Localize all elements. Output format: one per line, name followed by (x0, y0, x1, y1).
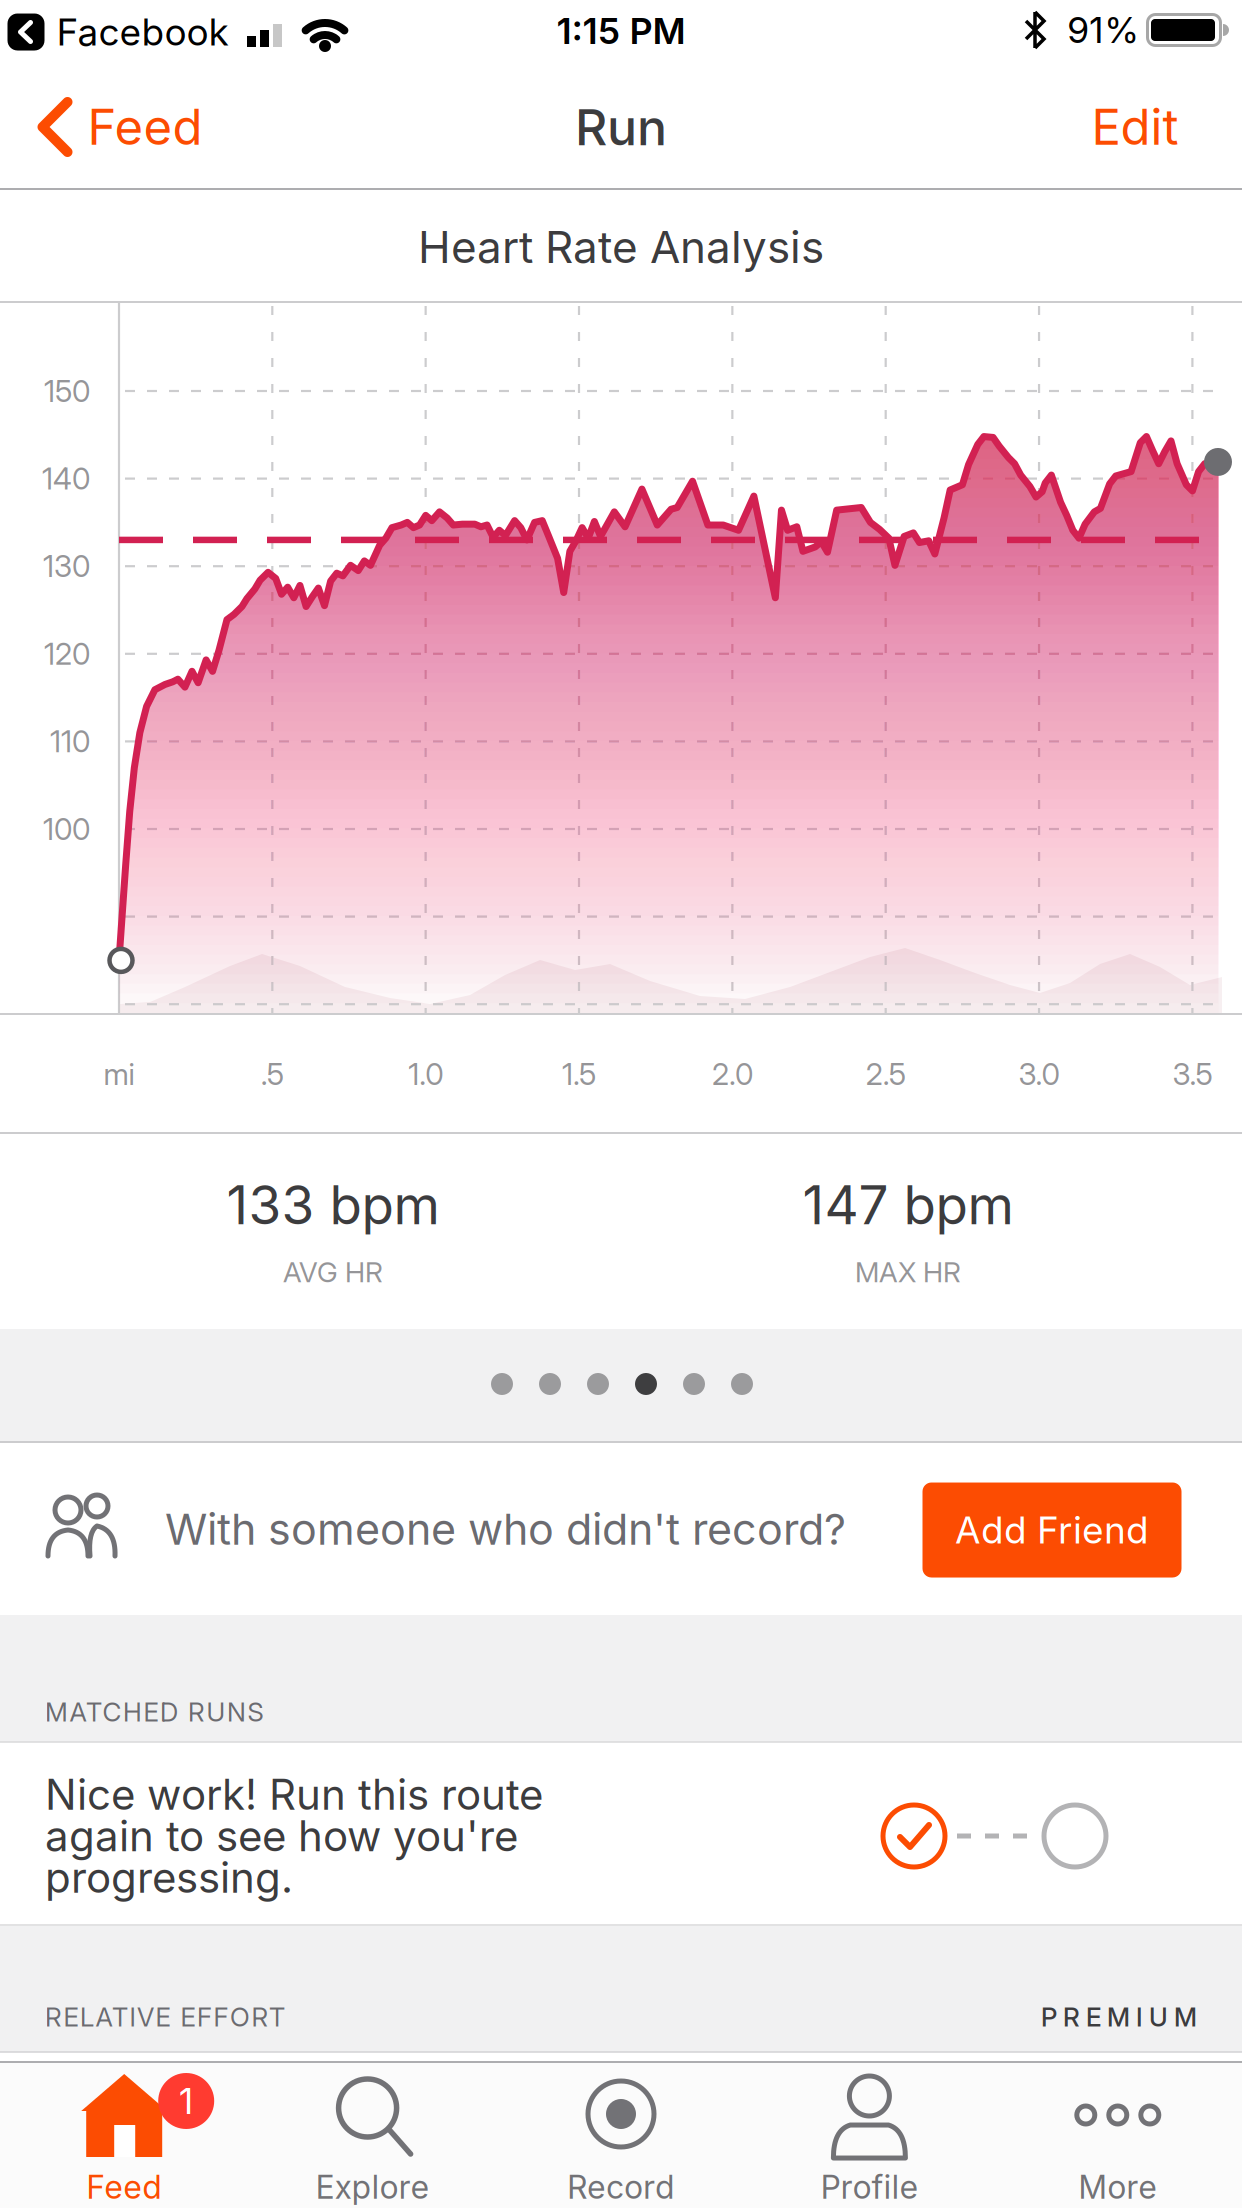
staticText: Add Friend (955, 1508, 1149, 1552)
button[interactable]: Explore (253, 2064, 493, 2208)
staticText: With someone who didn't record? (165, 1504, 846, 1554)
staticText: Feed (86, 2168, 162, 2206)
staticText: 3.0 (1019, 1056, 1060, 1092)
button[interactable]: Facebook (7, 10, 228, 54)
staticText: 1.0 (408, 1056, 443, 1092)
staticText: 100 (43, 811, 90, 847)
staticText: Facebook (56, 10, 228, 54)
staticText: 110 (50, 724, 90, 759)
staticText: MAX HR (855, 1255, 961, 1288)
staticText: 1 (179, 2080, 194, 2122)
button[interactable]: 1 (4, 2064, 244, 2208)
button[interactable]: More (998, 2064, 1238, 2208)
button[interactable]: Nice work! Run this route again to see h… (0, 1744, 1242, 1924)
button[interactable]: Feed (37, 98, 202, 156)
staticText: 150 (44, 373, 90, 409)
button[interactable]: Edit (1091, 98, 1178, 156)
staticText: 2.5 (866, 1056, 906, 1092)
staticText: 147 bpm (802, 1174, 1013, 1236)
button[interactable]: Record (501, 2064, 741, 2208)
staticText: 133 bpm (226, 1174, 439, 1236)
staticText: 1.5 (562, 1056, 596, 1092)
staticText: 3.5 (1172, 1056, 1212, 1092)
staticText: 2.0 (712, 1056, 753, 1092)
staticText: RELATIVE EFFORT (45, 2002, 285, 2032)
staticText: 140 (42, 461, 90, 496)
staticText: 1:15 PM (556, 10, 685, 52)
staticText: Explore (316, 2168, 430, 2206)
staticText: Nice work! Run this route again to see h… (45, 1770, 543, 1902)
staticText: MATCHED RUNS (45, 1697, 263, 1727)
staticText: PREMIUM (1041, 2002, 1197, 2032)
staticText: More (1078, 2168, 1157, 2206)
staticText: Run (575, 97, 667, 156)
button[interactable]: Profile (749, 2064, 989, 2208)
staticText: .5 (261, 1056, 284, 1092)
staticText: Edit (1091, 98, 1178, 156)
staticText: 120 (44, 636, 90, 671)
staticText: Feed (87, 98, 202, 156)
staticText: mi (103, 1056, 134, 1092)
staticText: 130 (43, 548, 90, 584)
button[interactable]: Add Friend (922, 1482, 1181, 1577)
staticText: Record (567, 2168, 675, 2206)
staticText: Profile (820, 2168, 918, 2206)
staticText: 91% (1067, 9, 1139, 51)
staticText: Heart Rate Analysis (418, 221, 824, 273)
staticText: AVG HR (283, 1255, 383, 1288)
